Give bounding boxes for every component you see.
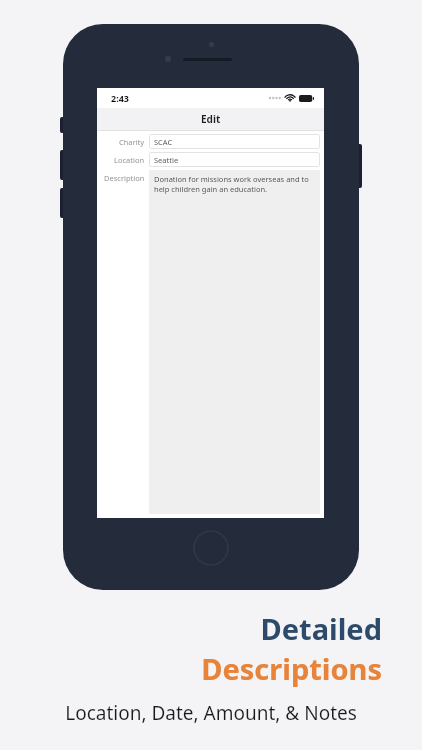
staticText: Location (114, 155, 145, 165)
button[interactable]: SCAC (149, 134, 320, 149)
staticText: Edit (201, 112, 221, 126)
staticText: Seattle (154, 155, 179, 165)
staticText: Charity (119, 137, 145, 147)
staticText: Donation for missions work overseas and … (154, 174, 315, 194)
staticText: Detailed (0, 609, 382, 648)
staticText: Location, Date, Amount, & Notes (0, 700, 422, 726)
button[interactable]: Seattle (149, 152, 320, 167)
staticText: 2:43 (111, 92, 129, 104)
staticText: Description (104, 173, 145, 183)
staticText: SCAC (154, 137, 173, 147)
staticText: Descriptions (0, 649, 382, 688)
button[interactable]: Donation for missions work overseas and … (149, 170, 320, 514)
button[interactable]: Edit (97, 108, 324, 130)
